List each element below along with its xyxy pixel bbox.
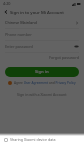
staticText: 4:20 [3,1,11,6]
button[interactable]: Enter password [5,41,79,52]
button[interactable]: Agree User Agreement and Privacy Policy [8,81,79,85]
button[interactable]: Sign in with a Xiaomi Account [17,91,67,98]
button[interactable]: Back [3,9,9,15]
staticText: Enter password [5,44,33,49]
other: Enable data sharing [4,138,8,142]
staticText: Chinese Mainland [5,20,37,25]
staticText: Agree User Agreement and Privacy Policy [14,81,76,85]
button[interactable]: Chinese Mainland [5,17,79,28]
staticText: Sign in to your Mi Account [10,9,64,15]
button[interactable]: Enable data sharing [4,137,84,142]
staticText: Phone number [5,32,32,37]
staticText: Forgot password [49,55,79,60]
button[interactable]: Phone number [5,29,79,40]
button[interactable]: Sign in [5,67,79,77]
staticText: Sign in with a Xiaomi Account [17,92,67,97]
button[interactable]: Forgot password [49,54,79,61]
staticText: Sign in [35,69,49,75]
staticText: Sharing Xiaomi device data [10,137,56,142]
